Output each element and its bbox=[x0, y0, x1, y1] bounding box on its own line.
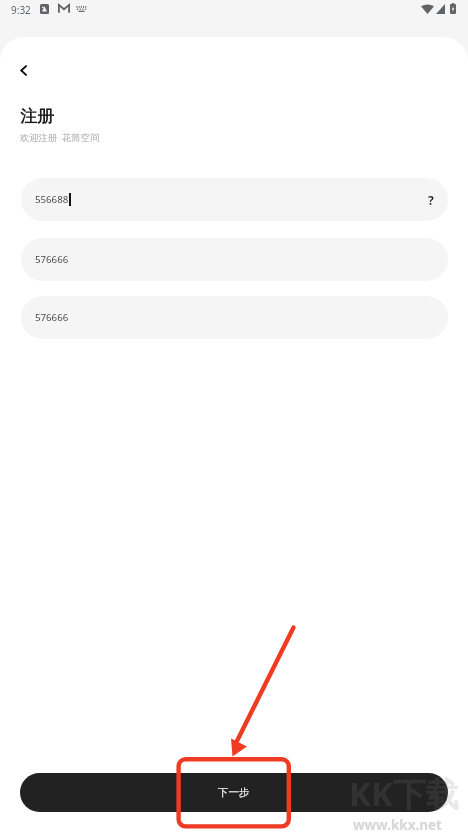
button[interactable]: 556688 bbox=[21, 178, 448, 221]
staticText: KK下载 bbox=[349, 771, 459, 816]
staticText: 注册 bbox=[20, 106, 54, 127]
button[interactable]: 576666 bbox=[21, 238, 448, 281]
staticText: 下一步 bbox=[218, 786, 250, 799]
staticText: ? bbox=[428, 192, 434, 208]
staticText: www.kkx.net bbox=[353, 816, 442, 832]
button[interactable]: Back bbox=[9, 56, 37, 84]
staticText: 576666 bbox=[35, 253, 69, 266]
staticText: 欢迎注册 花筒空间 bbox=[20, 131, 100, 144]
staticText: 9:32 bbox=[11, 3, 31, 17]
button[interactable]: Help bbox=[418, 187, 444, 213]
button[interactable]: 下一步 bbox=[20, 773, 448, 812]
staticText: 576666 bbox=[35, 311, 69, 324]
button[interactable]: 576666 bbox=[21, 296, 448, 339]
staticText: 556688 bbox=[35, 193, 69, 206]
